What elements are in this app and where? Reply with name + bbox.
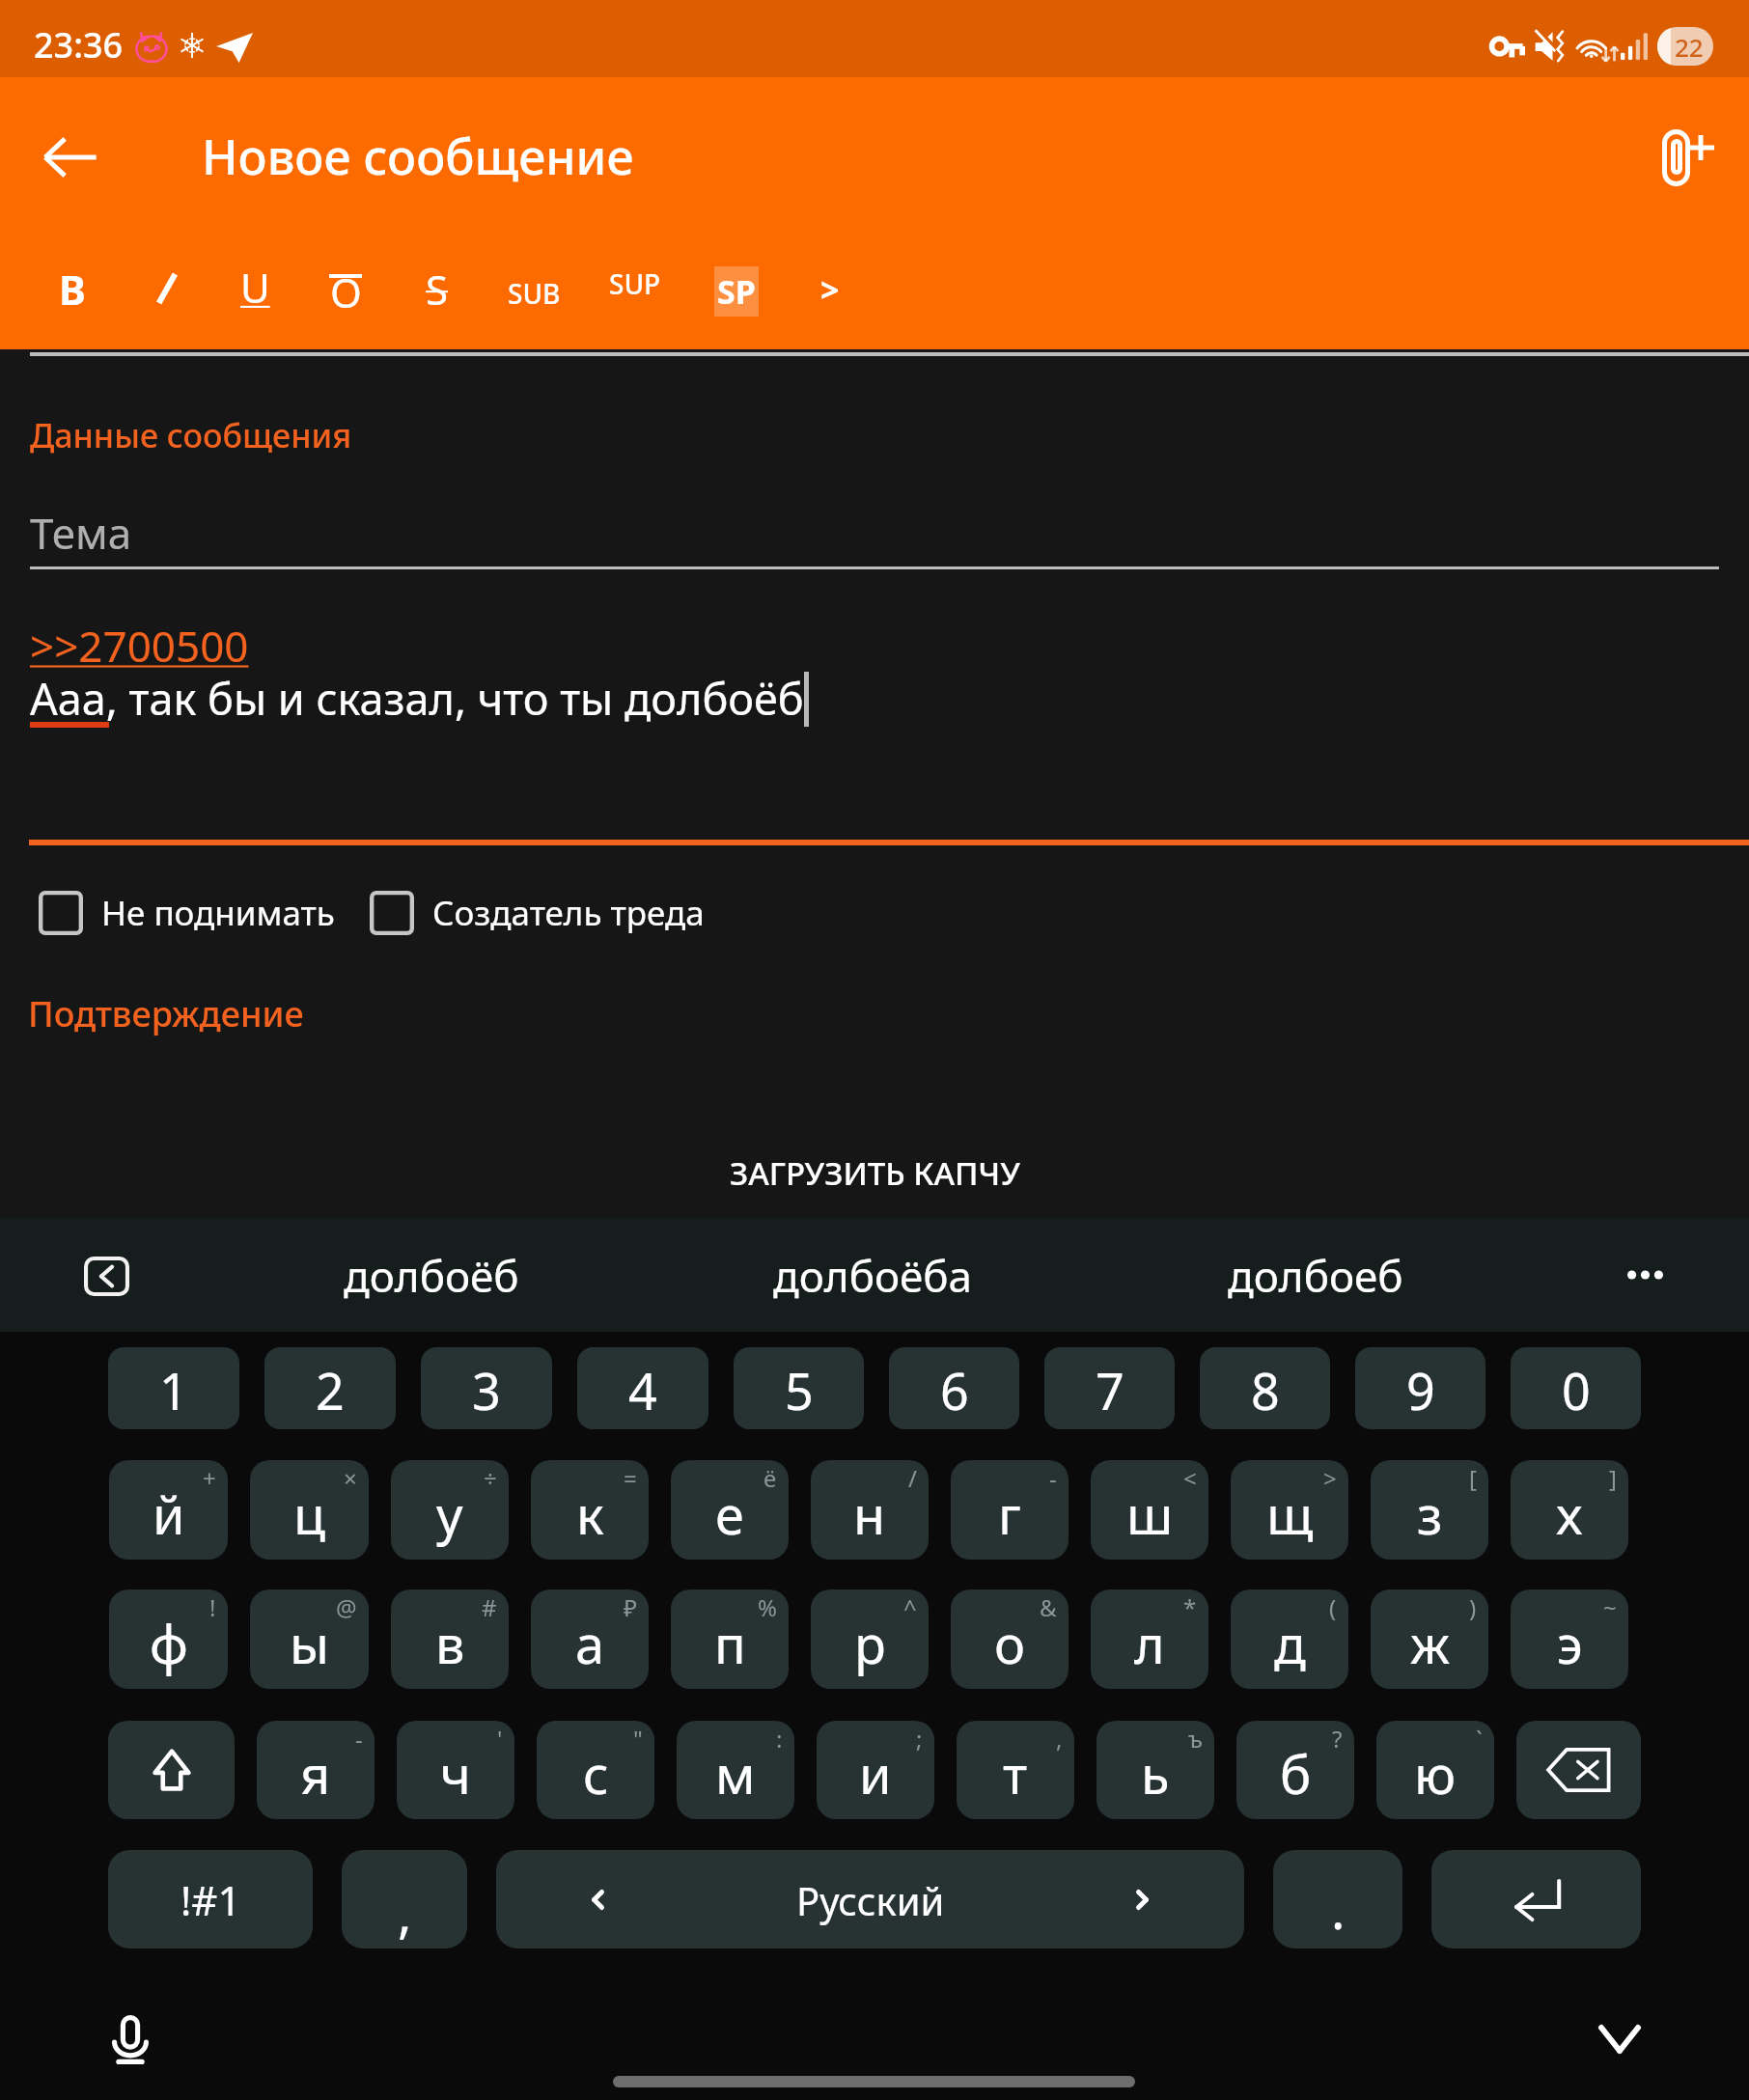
staticText: э [1557, 1608, 1583, 1679]
button[interactable]: п [671, 1589, 789, 1689]
button[interactable]: Создатель треда [432, 890, 705, 936]
button[interactable]: 6 [889, 1347, 1019, 1429]
button[interactable]: 4 [577, 1347, 708, 1429]
button[interactable]: долбоеб [1132, 1218, 1499, 1332]
button[interactable]: д [1231, 1589, 1348, 1689]
button[interactable]: и [817, 1721, 934, 1819]
staticText: ) [1469, 1591, 1477, 1623]
staticText: B [59, 262, 86, 317]
staticText: н [853, 1478, 886, 1550]
staticText: я [300, 1738, 331, 1810]
button[interactable]: Enter [1431, 1850, 1641, 1948]
button[interactable]: з [1371, 1460, 1488, 1560]
button[interactable]: у [391, 1460, 509, 1560]
button[interactable]: р [811, 1589, 929, 1689]
button[interactable]: Back [25, 112, 116, 203]
staticText: ^ [903, 1591, 917, 1623]
button[interactable]: Hide keyboard [1584, 2010, 1655, 2068]
button[interactable]: й [109, 1460, 228, 1560]
staticText: Тема [30, 504, 132, 562]
button[interactable]: !#1 [108, 1850, 313, 1948]
staticText: , [398, 1877, 412, 1948]
staticText: - [355, 1723, 363, 1755]
button[interactable]: SP [692, 237, 781, 349]
staticText: 2 [316, 1356, 345, 1424]
button[interactable]: > [786, 237, 874, 349]
button[interactable]: 7 [1044, 1347, 1175, 1429]
button[interactable]: Создатель треда [370, 891, 414, 935]
staticText: 0 [1562, 1356, 1591, 1424]
staticText: ф [150, 1608, 188, 1679]
button[interactable]: о [951, 1589, 1069, 1689]
button[interactable]: ж [1371, 1589, 1488, 1689]
staticText: ЗАГРУЗИТЬ КАПЧУ [730, 1151, 1020, 1195]
button[interactable]: ц [250, 1460, 369, 1560]
button[interactable]: Backspace [1516, 1721, 1641, 1819]
staticText: + [203, 1462, 216, 1494]
staticText: 7 [1096, 1356, 1124, 1424]
button[interactable]: н [811, 1460, 929, 1560]
button[interactable]: B [28, 237, 117, 349]
button[interactable]: Не поднимать [39, 891, 83, 935]
staticText: а [575, 1608, 605, 1679]
button[interactable]: л [1091, 1589, 1208, 1689]
button[interactable]: ф [109, 1589, 228, 1689]
button[interactable]: O [301, 237, 390, 349]
button[interactable]: э [1511, 1589, 1628, 1689]
button[interactable]: 3 [421, 1347, 552, 1429]
button[interactable]: SUP [591, 237, 680, 349]
staticText: : [776, 1723, 783, 1755]
staticText: ` [1476, 1723, 1483, 1755]
button[interactable]: 5 [734, 1347, 864, 1429]
staticText: ₽ [624, 1591, 637, 1623]
button[interactable]: Shift [108, 1721, 235, 1819]
button[interactable]: ш [1091, 1460, 1208, 1560]
button[interactable]: Attach file [1639, 104, 1732, 210]
button[interactable]: ь [1097, 1721, 1214, 1819]
button[interactable]: ч [397, 1721, 514, 1819]
button[interactable]: S [393, 237, 482, 349]
staticText: . [1331, 1873, 1346, 1945]
button[interactable]: б [1236, 1721, 1354, 1819]
button[interactable]: ы [250, 1589, 369, 1689]
button[interactable]: е [671, 1460, 789, 1560]
button[interactable]: Voice input [95, 2003, 166, 2075]
button[interactable]: с [537, 1721, 654, 1819]
staticText: ( [1329, 1591, 1337, 1623]
button[interactable]: Previous suggestions [68, 1238, 145, 1313]
staticText: × [344, 1462, 357, 1494]
button[interactable]: 1 [108, 1347, 239, 1429]
staticText: ь [1141, 1738, 1170, 1810]
button[interactable]: ЗАГРУЗИТЬ КАПЧУ [0, 1143, 1749, 1202]
button[interactable]: г [951, 1460, 1069, 1560]
button[interactable]: SUB [489, 237, 578, 349]
button[interactable]: м [677, 1721, 794, 1819]
button[interactable]: я [257, 1721, 375, 1819]
button[interactable]: долбоёба [670, 1218, 1075, 1332]
button[interactable]: 2 [264, 1347, 396, 1429]
button[interactable] [123, 237, 211, 349]
staticText: Не поднимать [101, 890, 335, 936]
button[interactable]: т [957, 1721, 1074, 1819]
button[interactable]: а [531, 1589, 649, 1689]
button[interactable]: щ [1231, 1460, 1348, 1560]
button[interactable]: 0 [1511, 1347, 1641, 1429]
button[interactable]: More options [1611, 1241, 1679, 1309]
staticText: % [758, 1591, 777, 1623]
button[interactable]: долбоёб [258, 1218, 605, 1332]
button[interactable]: . [1273, 1850, 1402, 1948]
staticText: м [715, 1738, 756, 1810]
button[interactable]: U [210, 237, 299, 349]
button[interactable]: к [531, 1460, 649, 1560]
button[interactable]: х [1511, 1460, 1628, 1560]
button[interactable]: Русский [496, 1850, 1244, 1948]
button[interactable]: , [342, 1850, 467, 1948]
staticText: SUB [508, 275, 561, 312]
button[interactable]: 9 [1355, 1347, 1485, 1429]
button[interactable]: в [391, 1589, 509, 1689]
button[interactable]: Не поднимать [101, 890, 335, 936]
staticText: ш [1126, 1478, 1174, 1550]
button[interactable]: 8 [1200, 1347, 1330, 1429]
button[interactable]: ю [1376, 1721, 1494, 1819]
staticText: и [859, 1738, 892, 1810]
